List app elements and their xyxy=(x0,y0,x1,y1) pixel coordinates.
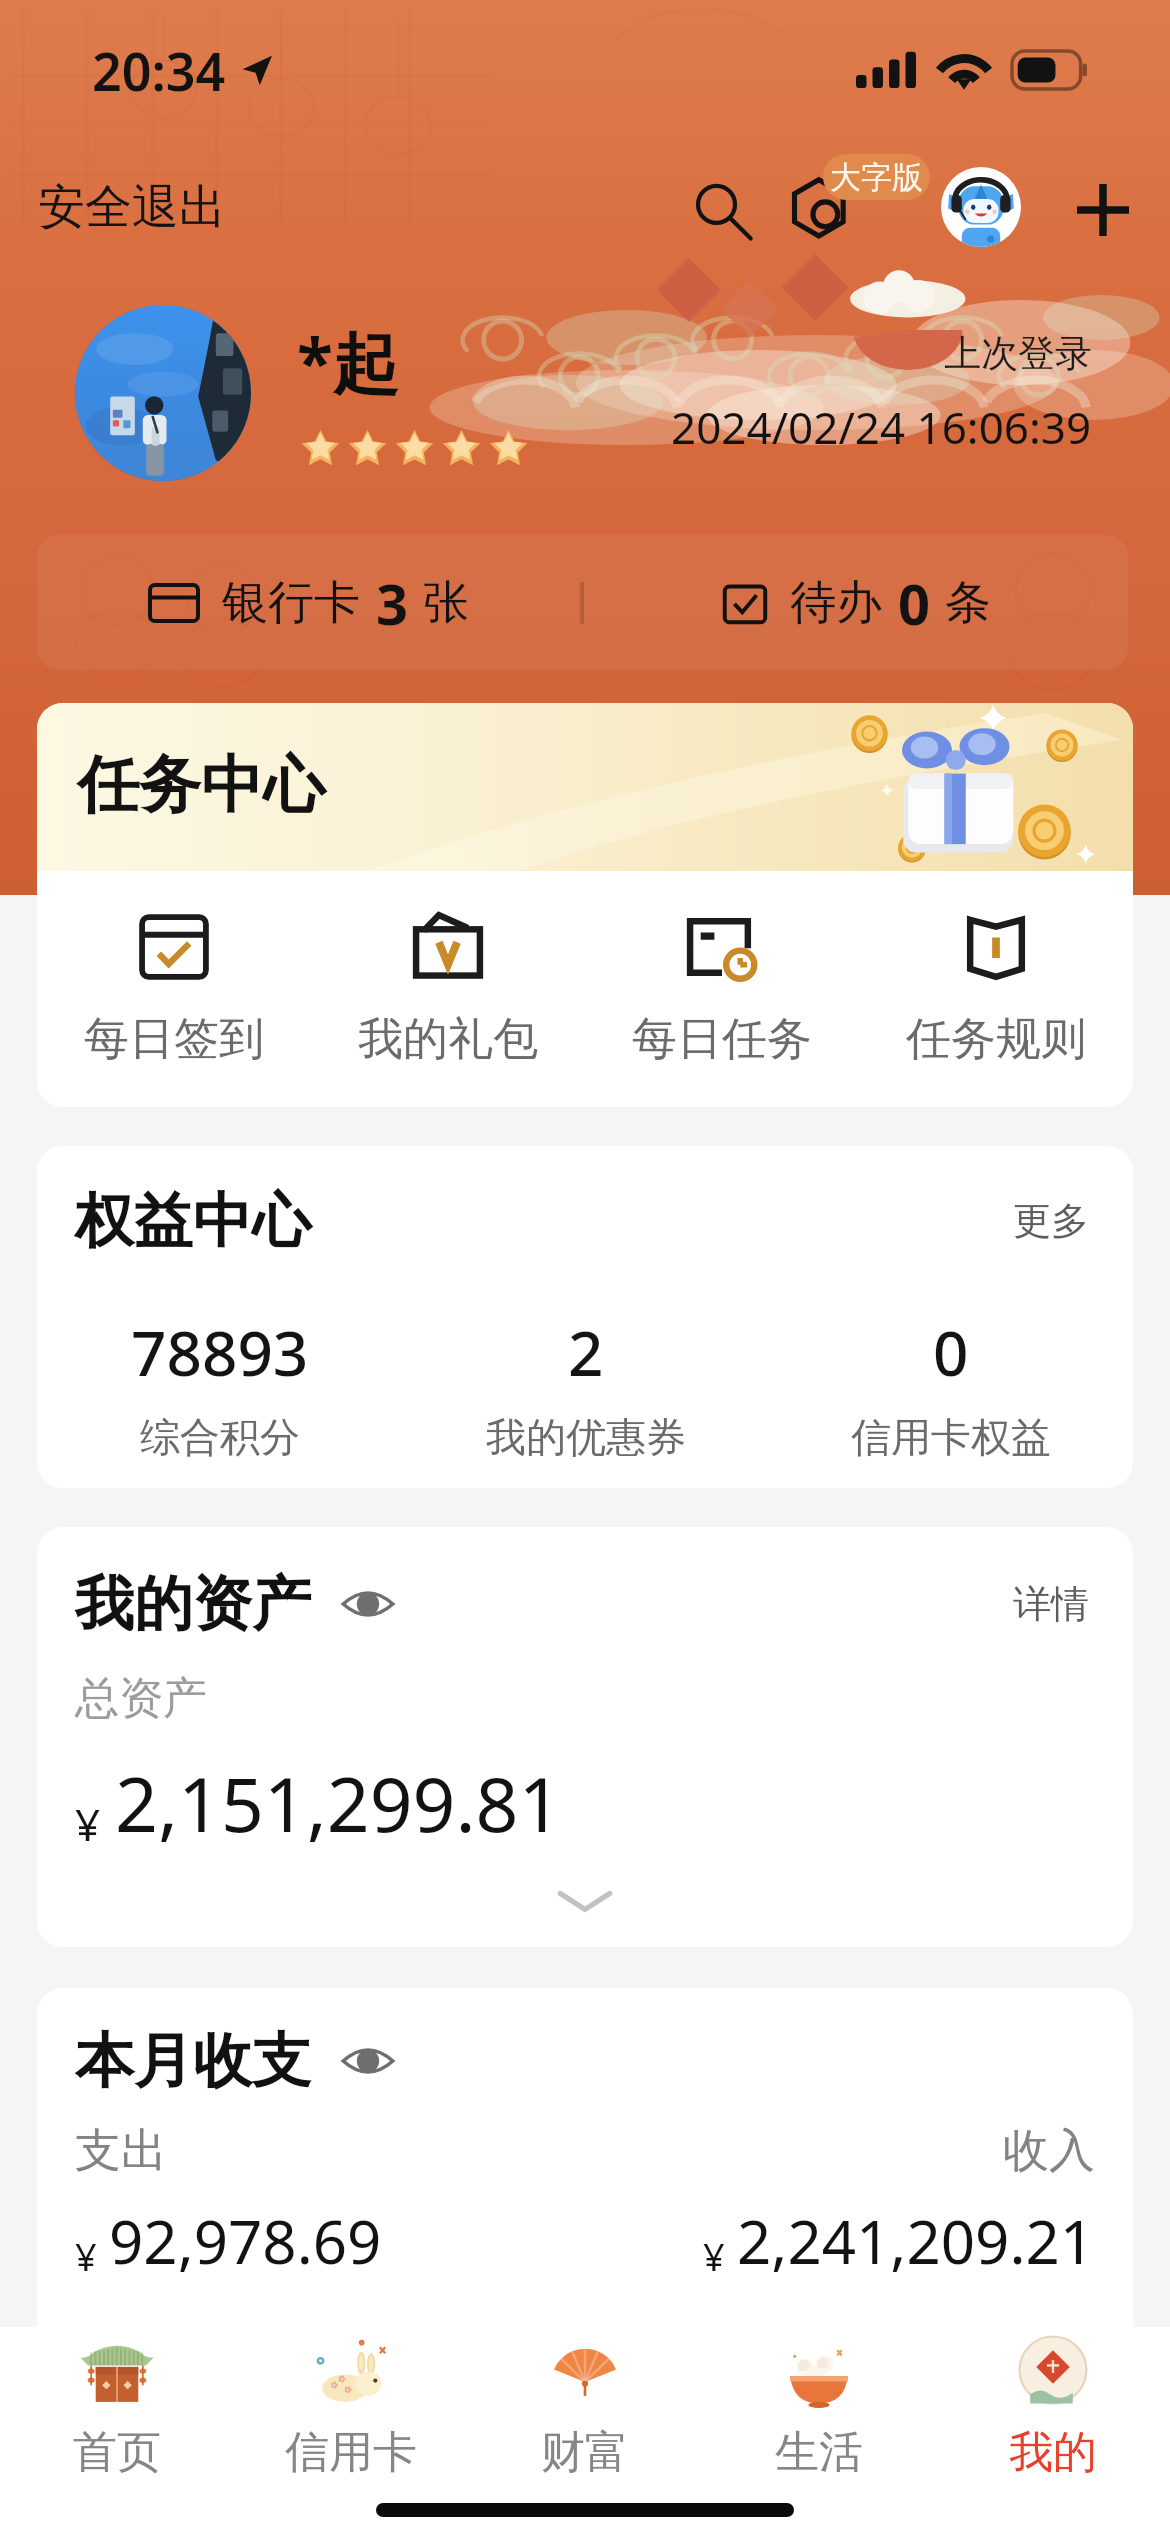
button[interactable]: 搜索 xyxy=(671,160,771,260)
staticText: 首页 xyxy=(73,2425,161,2480)
staticText: 我的优惠券 xyxy=(486,1412,686,1462)
staticText: 支出 xyxy=(75,2122,167,2180)
staticText: 我的资产 xyxy=(75,1567,311,1641)
staticText: 每日任务 xyxy=(632,1011,812,1068)
staticText: 3 xyxy=(376,565,409,641)
staticText: 上次登录 xyxy=(944,330,1092,377)
staticText: 收入 xyxy=(1003,2122,1095,2180)
staticText: 每日签到 xyxy=(84,1011,264,1068)
staticText: 20:34 xyxy=(92,35,226,106)
button[interactable]: 隐藏金额 xyxy=(337,2030,399,2092)
button[interactable]: 每日签到 xyxy=(37,913,311,1068)
staticText: 信用卡 xyxy=(285,2425,417,2480)
staticText: *起 xyxy=(297,316,399,406)
staticText: 大字版 xyxy=(830,158,923,197)
staticText: 条 xyxy=(945,574,991,632)
staticText: 我的 xyxy=(1009,2425,1097,2480)
staticText: 张 xyxy=(423,574,469,632)
button[interactable]: 我的礼包 xyxy=(311,913,585,1068)
button[interactable]: 大字版 xyxy=(823,154,930,200)
button[interactable]: 展开资产 xyxy=(37,1854,1133,1947)
button[interactable]: 0 xyxy=(768,1310,1133,1462)
button[interactable]: 我的 xyxy=(936,2327,1170,2487)
staticText: ¥ xyxy=(75,1794,101,1854)
staticText: 92,978.69 xyxy=(109,2200,382,2282)
staticText: 信用卡权益 xyxy=(851,1412,1051,1462)
staticText: ¥ xyxy=(703,2230,725,2282)
button[interactable]: 用户头像 xyxy=(75,305,251,481)
staticText: 财富 xyxy=(541,2425,629,2480)
button[interactable]: 隐藏金额 xyxy=(337,1573,399,1635)
staticText: 任务规则 xyxy=(906,1011,1086,1068)
button[interactable]: 银行卡 xyxy=(37,535,580,670)
button[interactable]: 信用卡 xyxy=(234,2327,468,2487)
staticText: 0 xyxy=(898,565,931,641)
button[interactable]: 首页 xyxy=(0,2327,234,2487)
button[interactable]: 扫一扫 xyxy=(771,160,871,260)
button[interactable]: 78893 xyxy=(37,1310,403,1462)
staticText: 权益中心 xyxy=(75,1184,311,1258)
staticText: 我的礼包 xyxy=(358,1011,538,1068)
staticText: 2 xyxy=(568,1310,604,1394)
button[interactable]: 任务规则 xyxy=(859,913,1133,1068)
staticText: 综合积分 xyxy=(140,1412,300,1462)
staticText: ¥ xyxy=(75,2230,97,2282)
staticText: 2,241,209.21 xyxy=(737,2200,1095,2282)
button[interactable]: 详情 xyxy=(1007,1574,1095,1634)
staticText: 任务中心 xyxy=(77,746,325,824)
staticText: 2,151,299.81 xyxy=(115,1752,562,1854)
staticText: 银行卡 xyxy=(222,574,360,632)
button[interactable]: 安全退出 xyxy=(36,172,228,243)
staticText: 78893 xyxy=(131,1310,309,1394)
button[interactable]: 生活 xyxy=(702,2327,936,2487)
button[interactable]: 待办 xyxy=(584,535,1128,670)
button[interactable]: 2 xyxy=(403,1310,768,1462)
staticText: 生活 xyxy=(775,2425,863,2480)
staticText: 0 xyxy=(933,1310,969,1394)
button[interactable]: 每日任务 xyxy=(585,913,859,1068)
button[interactable]: 财富 xyxy=(468,2327,702,2487)
staticText: 2024/02/24 16:06:39 xyxy=(671,397,1092,457)
staticText: 总资产 xyxy=(75,1671,207,1726)
staticText: 本月收支 xyxy=(75,2024,311,2098)
button[interactable]: 智能客服 xyxy=(934,160,1028,254)
staticText: 待办 xyxy=(790,574,882,632)
button[interactable]: 添加 xyxy=(1053,160,1153,260)
button[interactable]: 更多 xyxy=(1007,1191,1095,1251)
